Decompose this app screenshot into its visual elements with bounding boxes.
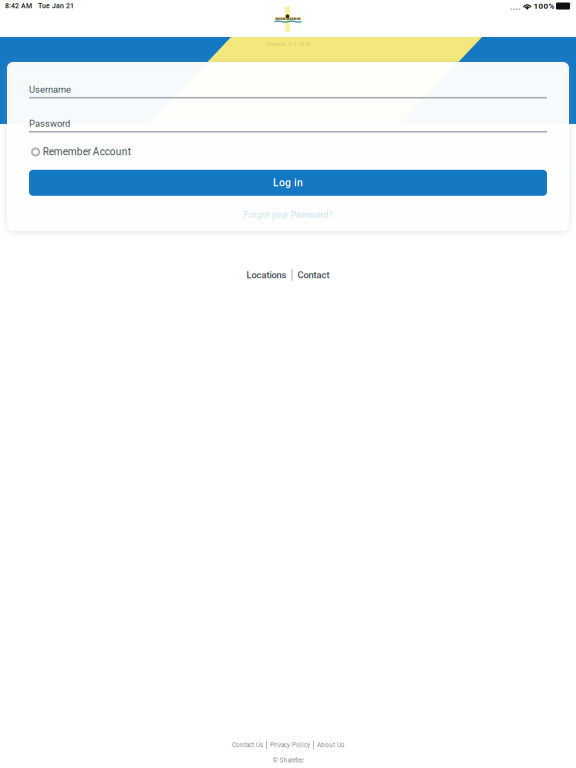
button[interactable]: Privacy Policy xyxy=(270,741,310,749)
button[interactable]: Remember Account xyxy=(29,146,131,158)
staticText: Forgot your Password? xyxy=(243,210,332,220)
staticText: Contact xyxy=(298,269,330,280)
staticText: Privacy Policy xyxy=(270,741,310,749)
staticText: Tue Jan 21 xyxy=(38,2,74,10)
staticText: © Sharetec xyxy=(272,756,303,764)
staticText: 8:42 AM xyxy=(5,2,32,10)
staticText: Log in xyxy=(273,177,303,189)
staticText: Remember Account xyxy=(43,146,131,158)
staticText: Version: 2.1.10.9 xyxy=(266,40,309,47)
button[interactable]: Contact xyxy=(298,269,330,280)
staticText: Username xyxy=(29,84,71,95)
button[interactable]: Locations xyxy=(246,269,286,280)
button[interactable]: About Us xyxy=(317,741,344,749)
staticText: About Us xyxy=(317,741,344,749)
staticText: Contact Us xyxy=(232,741,263,749)
staticText: Locations xyxy=(246,269,286,280)
staticText: Password xyxy=(29,118,70,129)
button[interactable]: Forgot your Password? xyxy=(29,210,547,220)
button[interactable]: Contact Us xyxy=(232,741,263,749)
button[interactable]: Log in xyxy=(29,170,547,196)
staticText: 100% xyxy=(533,1,554,11)
